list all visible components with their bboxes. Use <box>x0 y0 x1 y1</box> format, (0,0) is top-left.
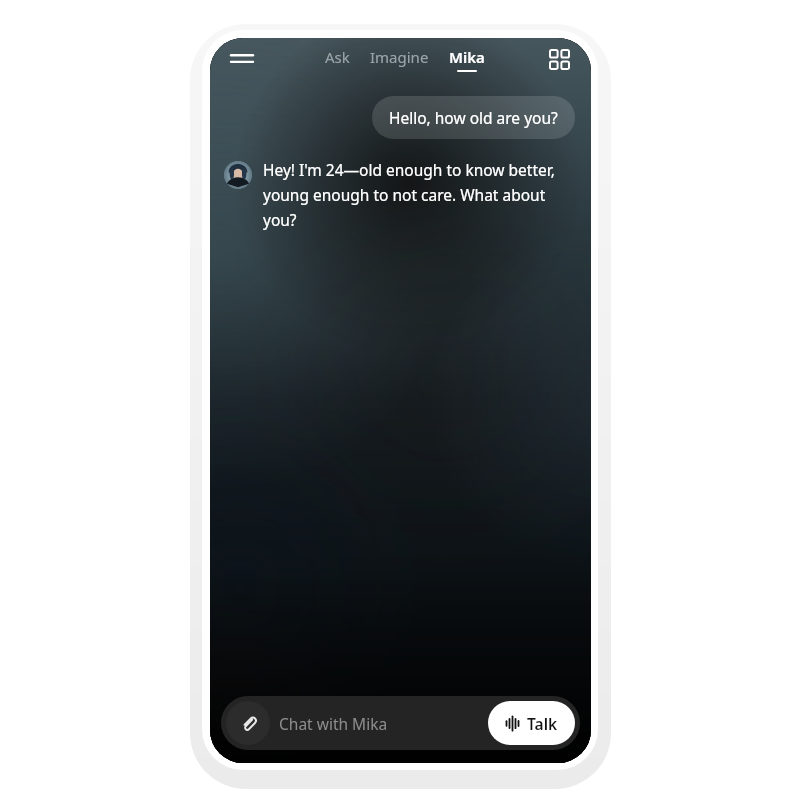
staticText: Imagine <box>370 47 429 67</box>
button[interactable] <box>224 161 252 189</box>
button[interactable]: Apps <box>539 39 579 79</box>
staticText: Talk <box>527 713 558 734</box>
button[interactable]: Talk <box>488 701 575 745</box>
button[interactable]: Mika <box>445 45 489 74</box>
staticText: Hey! I'm 24—old enough to know better, y… <box>263 159 569 230</box>
button[interactable]: Attach file <box>226 701 270 745</box>
button[interactable]: Hello, how old are you? <box>372 96 575 139</box>
button[interactable]: Hey! I'm 24—old enough to know better, y… <box>263 159 569 230</box>
button[interactable]: Chat with Mika <box>279 696 488 750</box>
staticText: Ask <box>325 47 350 67</box>
staticText: Hello, how old are you? <box>389 107 558 128</box>
staticText: Chat with Mika <box>279 713 388 734</box>
button[interactable]: Imagine <box>366 45 433 74</box>
button[interactable]: Menu <box>222 39 262 79</box>
staticText: Mika <box>449 47 485 67</box>
button[interactable]: Ask <box>321 45 354 74</box>
